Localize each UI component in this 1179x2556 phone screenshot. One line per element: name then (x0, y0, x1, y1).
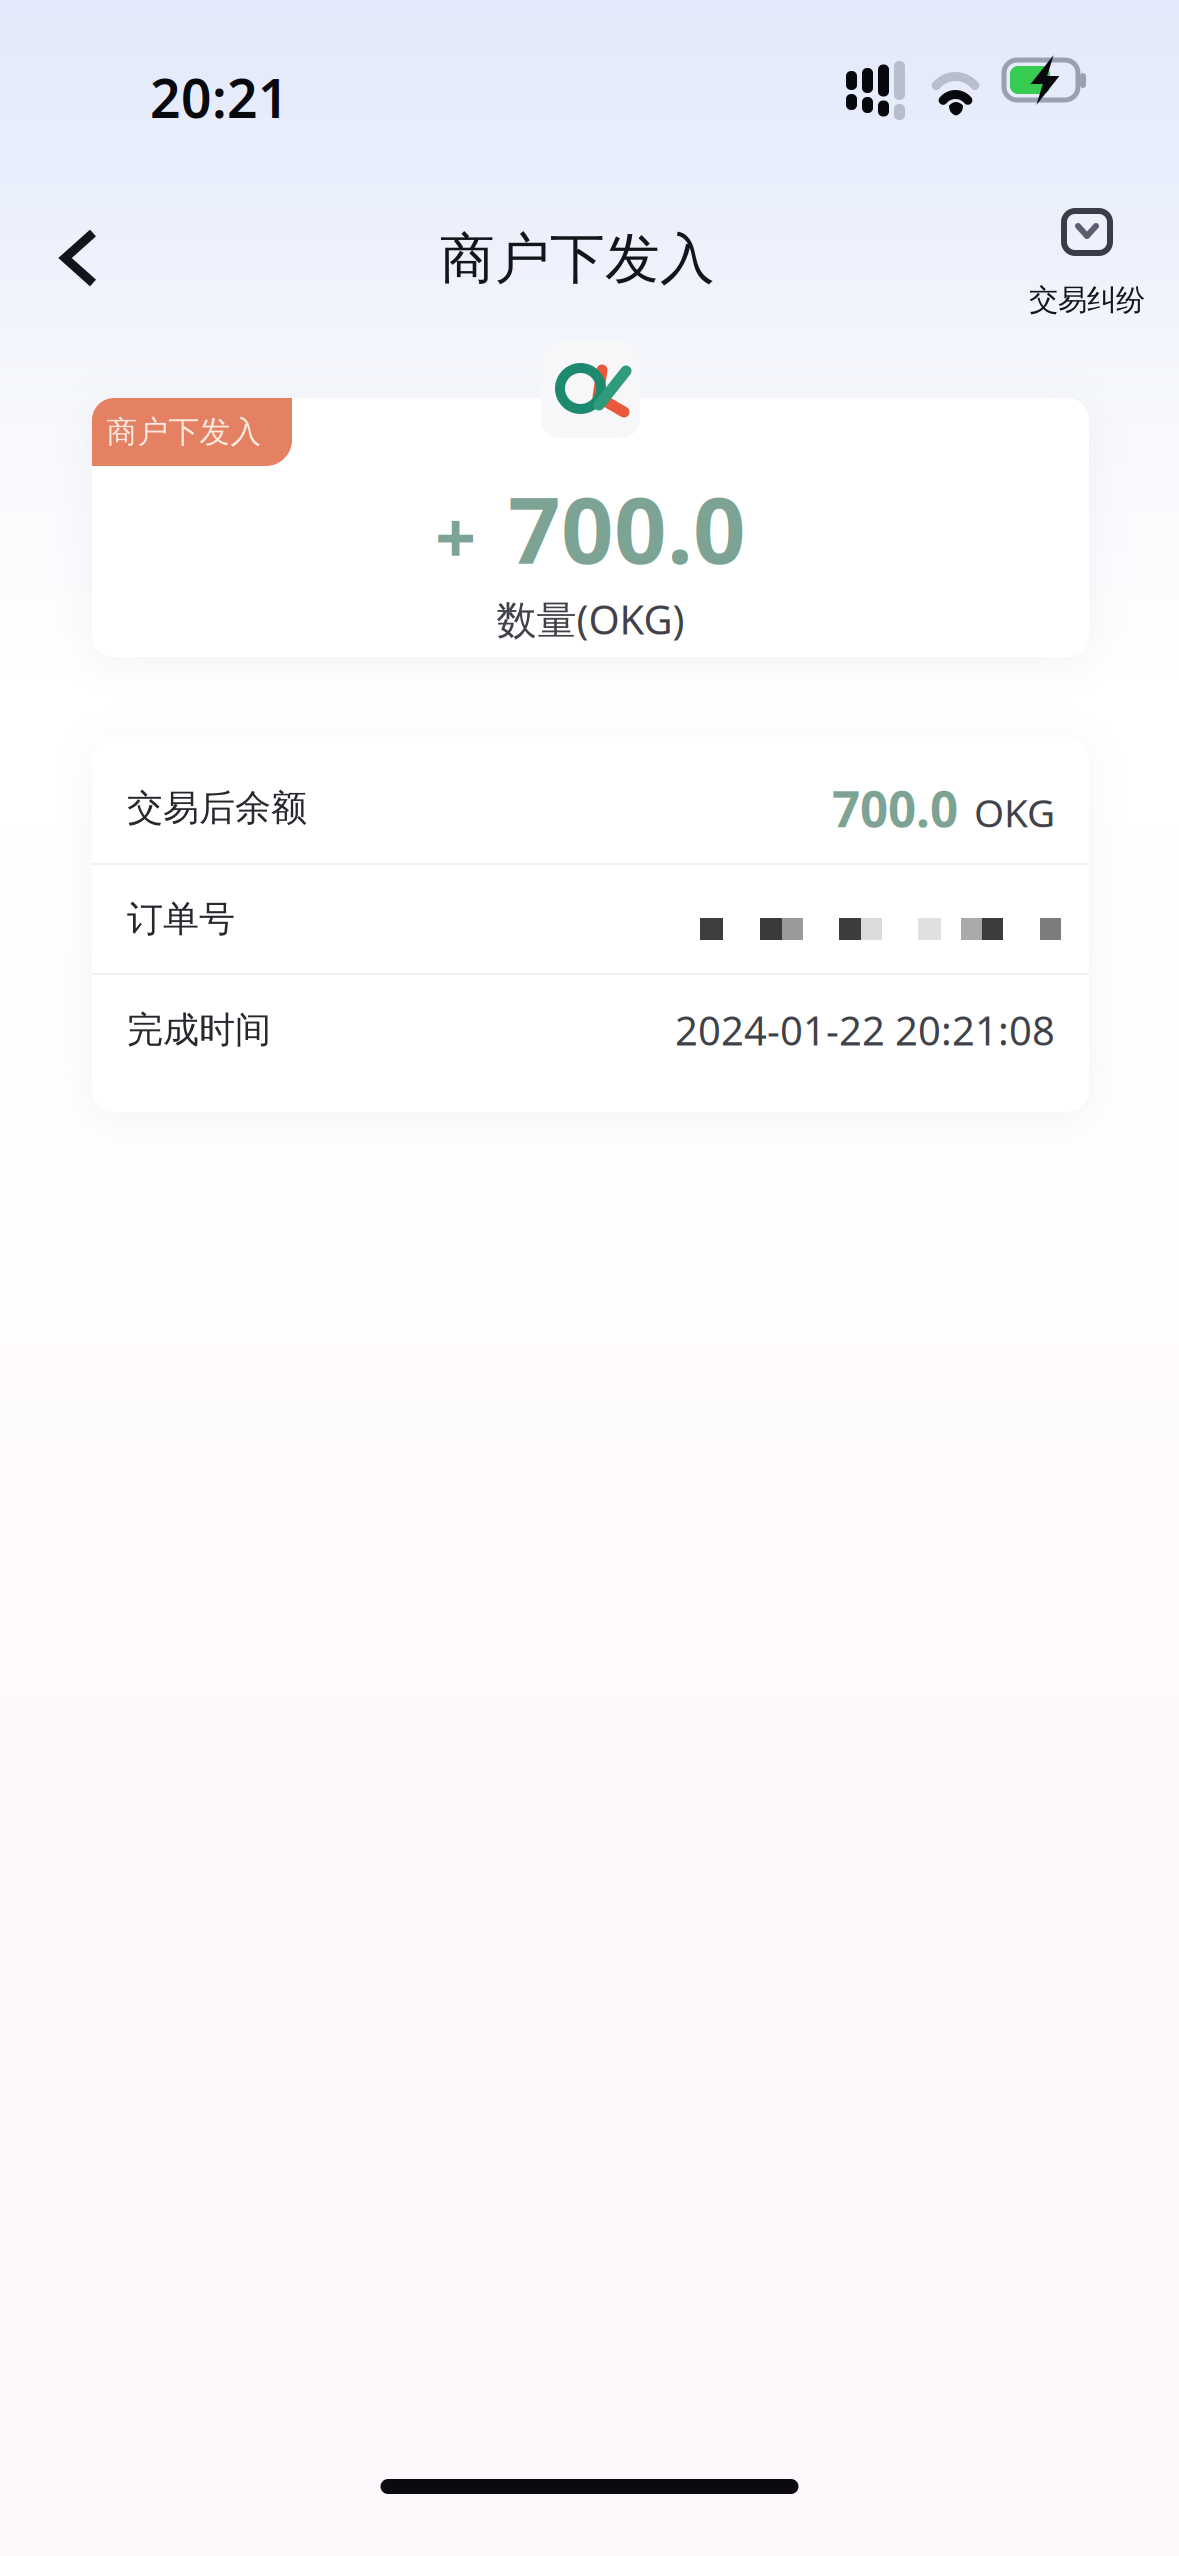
staticText: OKG (974, 786, 1055, 838)
staticText: 商户下发入 (106, 413, 261, 451)
staticText: 交易纠纷 (1029, 282, 1145, 318)
staticText: 20:21 (150, 62, 289, 133)
staticText: 商户下发入 (440, 225, 715, 292)
staticText: 数量(OKG) (496, 592, 684, 645)
staticText: 交易后余额 (127, 786, 307, 830)
staticText: 完成时间 (127, 1008, 271, 1052)
button[interactable]: 交易纠纷 (1002, 194, 1172, 330)
staticText: 700.0 (832, 775, 958, 841)
staticText: 订单号 (127, 897, 235, 941)
staticText: 700.0 (508, 467, 746, 589)
staticText: + (435, 488, 476, 584)
staticText: 2024-01-22 20:21:08 (675, 1003, 1055, 1056)
button[interactable]: 返回 (31, 204, 149, 314)
